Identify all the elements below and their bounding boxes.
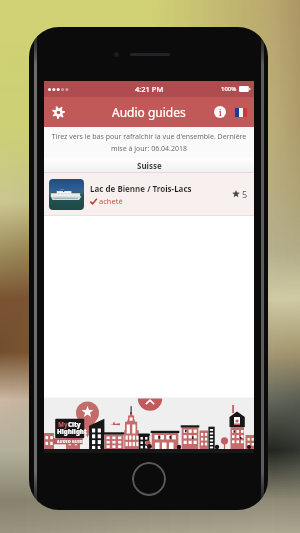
- staticText: My: [58, 420, 68, 428]
- staticText: acheté: [99, 196, 123, 206]
- staticText: 100%: [221, 85, 237, 93]
- staticText: Audio guides: [112, 104, 186, 120]
- staticText: 5: [242, 188, 248, 200]
- staticText: 4:21 PM: [135, 84, 164, 94]
- button[interactable]: Information: [209, 97, 230, 127]
- staticText: i: [219, 107, 222, 118]
- staticText: City: [68, 420, 81, 428]
- button[interactable]: Language: French: [230, 97, 252, 127]
- button[interactable]: Lac de Bienne / Trois-Lacs: [44, 173, 254, 215]
- staticText: AUDIO GUIDE: [57, 439, 86, 444]
- staticText: Tirez vers le bas pour rafraîchir la vue…: [47, 132, 251, 153]
- button[interactable]: Home: [132, 462, 166, 496]
- button[interactable]: Expand map: [138, 393, 163, 406]
- staticText: Lac de Bienne / Trois-Lacs: [90, 183, 192, 194]
- staticText: Highlight: [57, 427, 87, 435]
- staticText: Suisse: [137, 160, 162, 171]
- button[interactable]: Settings: [44, 97, 72, 127]
